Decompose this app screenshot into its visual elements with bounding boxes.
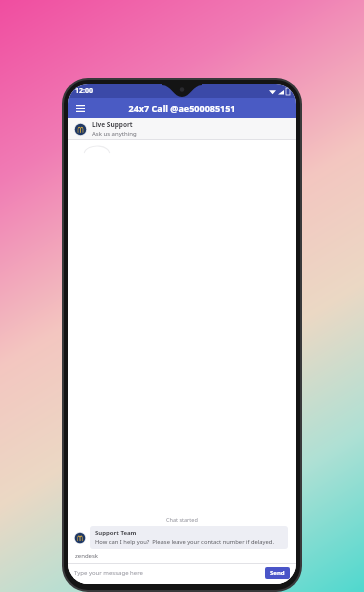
staticText: Chat started [166,516,198,523]
staticText: 24x7 Call @ae500085151 [128,102,236,114]
staticText: Type your message here [74,569,143,577]
staticText: Ask us anything [92,130,137,138]
button[interactable]: Live Support [68,118,296,140]
staticText: 12:00 [75,86,93,96]
staticText: Live Support [92,120,133,129]
button[interactable]: Send [265,567,290,579]
button[interactable]: Open navigation menu [72,100,88,116]
button[interactable]: Support Team [74,526,288,549]
button[interactable]: Type your message here [74,564,265,582]
staticText: How can I help you? Please leave your co… [95,538,274,546]
staticText: Support Team [95,529,137,537]
staticText: Send [270,569,285,577]
staticText: zendesk [75,552,99,560]
